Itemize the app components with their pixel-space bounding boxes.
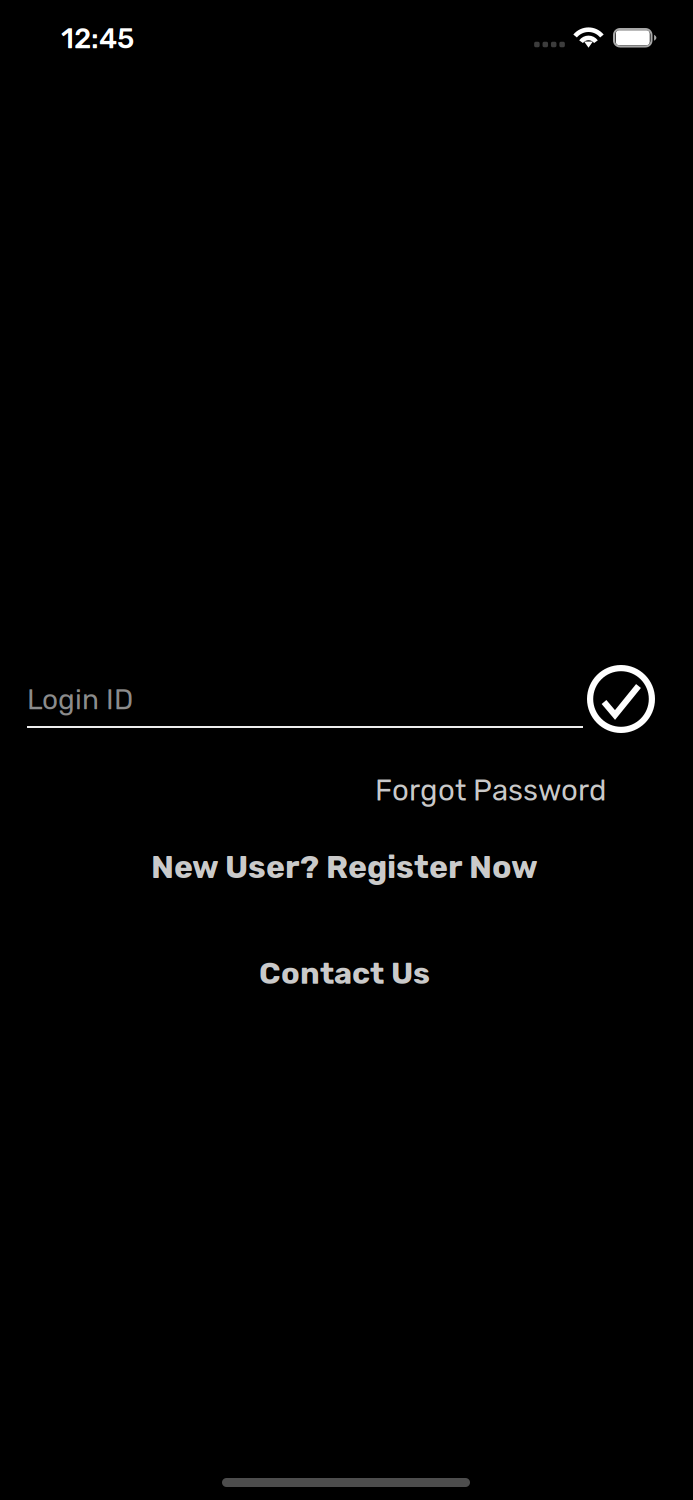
staticText: 12:45 [61,22,134,55]
staticText: Forgot Password [375,773,606,808]
staticText: Login ID [27,683,133,716]
button[interactable]: New User? Register Now [143,840,546,894]
button[interactable]: Contact Us [251,947,438,999]
staticText: New User? Register Now [151,848,538,886]
button[interactable]: Submit login ID [579,657,663,741]
staticText: Contact Us [259,955,430,991]
button[interactable]: Forgot Password [367,765,614,816]
